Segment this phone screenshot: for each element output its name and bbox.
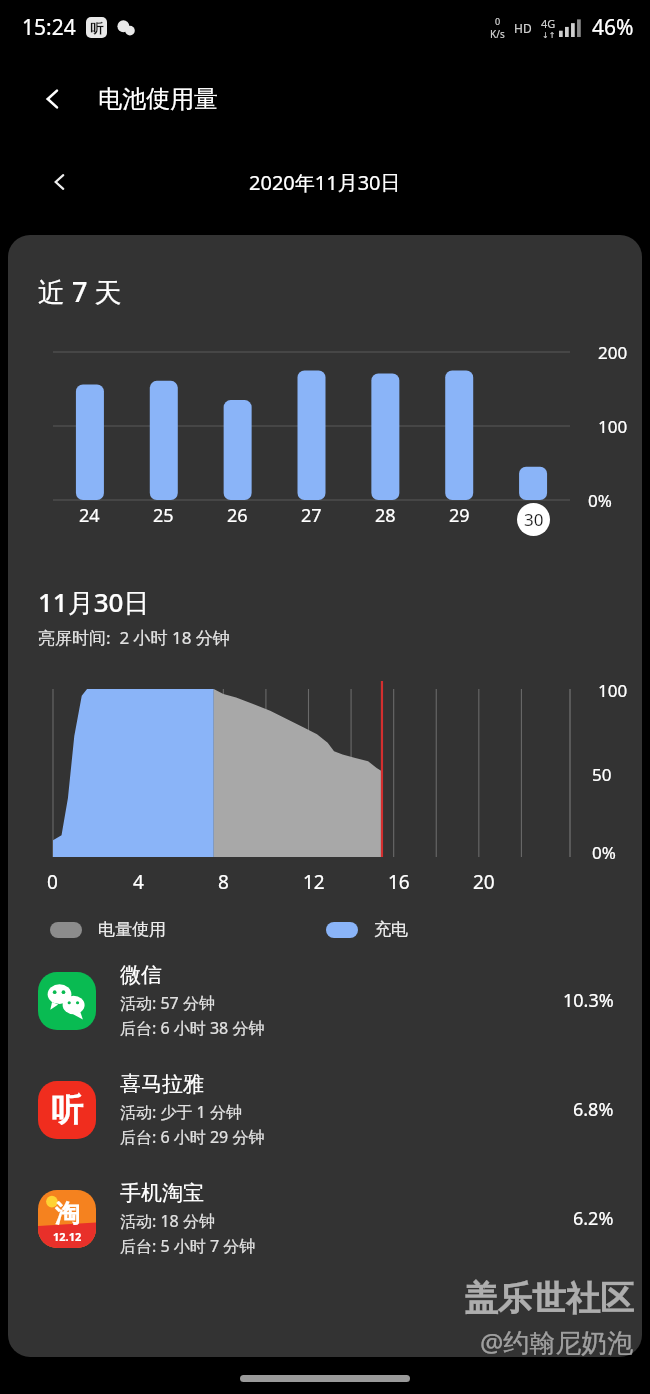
staticText: 活动: 57 分钟 [120, 992, 215, 1014]
staticText: 11月30日 [38, 584, 150, 620]
staticText: 12 [303, 869, 325, 895]
staticText: 后台: 6 小时 38 分钟 [120, 1017, 265, 1039]
staticText: 100 [598, 679, 628, 702]
staticText: 听 [51, 1090, 83, 1130]
staticText: 200 [598, 341, 628, 364]
staticText: 2020年11月30日 [249, 169, 401, 196]
staticText: 0 [495, 15, 501, 27]
staticText: 喜马拉雅 [120, 1071, 204, 1097]
staticText: 后台: 6 小时 29 分钟 [120, 1126, 265, 1148]
button[interactable]: 微信 [8, 958, 642, 1043]
staticText: 27 [301, 503, 322, 528]
staticText: 4 [133, 869, 144, 895]
staticText: K/s [490, 27, 505, 41]
staticText: 淘 [55, 1198, 80, 1229]
staticText: 0% [592, 841, 616, 864]
staticText: 0% [588, 489, 612, 512]
staticText: 电量使用 [98, 919, 166, 940]
staticText: 6.2% [573, 1206, 614, 1231]
staticText: 4G [541, 16, 556, 31]
staticText: 46% [592, 13, 634, 42]
staticText: 活动: 18 分钟 [120, 1210, 215, 1232]
button[interactable]: Back [30, 76, 76, 122]
button[interactable]: 听 [8, 1067, 642, 1152]
staticText: 20 [473, 869, 495, 895]
staticText: 8 [218, 869, 229, 895]
staticText: 手机淘宝 [120, 1180, 204, 1206]
staticText: 28 [375, 503, 396, 528]
staticText: 10.3% [563, 988, 614, 1013]
staticText: 100 [598, 415, 628, 438]
staticText: @约翰尼奶泡 [480, 1324, 634, 1360]
staticText: 15:24 [22, 13, 76, 42]
staticText: 盖乐世社区 [464, 1277, 634, 1320]
staticText: 后台: 5 小时 7 分钟 [120, 1235, 256, 1257]
staticText: 29 [449, 503, 470, 528]
staticText: HD [514, 20, 532, 36]
staticText: 12.12 [53, 1229, 82, 1244]
button[interactable]: 淘 [8, 1176, 642, 1261]
staticText: 6.8% [573, 1097, 614, 1122]
staticText: 25 [153, 503, 174, 528]
staticText: 50 [592, 763, 612, 786]
staticText: ↓↑ [542, 31, 556, 40]
staticText: 30 [524, 508, 544, 531]
staticText: 0 [47, 869, 58, 895]
staticText: 听 [90, 20, 103, 36]
button[interactable]: Previous day [38, 160, 82, 204]
staticText: 近 7 天 [38, 273, 122, 310]
staticText: 16 [388, 869, 410, 895]
staticText: 充电 [374, 919, 408, 940]
staticText: 微信 [120, 962, 162, 988]
staticText: 电池使用量 [98, 84, 218, 114]
staticText: 24 [79, 503, 100, 528]
staticText: 26 [227, 503, 248, 528]
staticText: 活动: 少于 1 分钟 [120, 1101, 242, 1123]
staticText: 亮屏时间: 2 小时 18 分钟 [38, 626, 230, 649]
